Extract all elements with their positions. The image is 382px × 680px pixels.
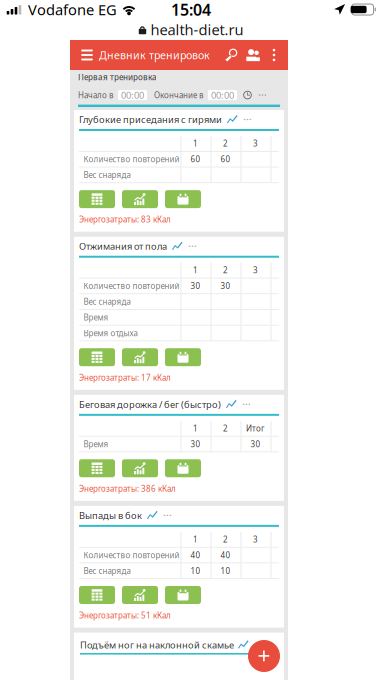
staticText: Количество повторений bbox=[84, 154, 180, 164]
button[interactable]: Search bbox=[221, 40, 241, 70]
staticText: 30 bbox=[251, 439, 261, 449]
staticText: 30 bbox=[191, 281, 201, 291]
staticText: 30 bbox=[221, 281, 231, 291]
button[interactable]: Table view bbox=[79, 586, 115, 604]
staticText: Беговая дорожка / бег (быстро) bbox=[79, 398, 221, 411]
button[interactable]: Friends bbox=[241, 40, 265, 70]
button[interactable]: Menu bbox=[75, 40, 99, 70]
staticText: Отжимания от пола bbox=[79, 240, 167, 252]
staticText: Энергозатраты: 386 кКал bbox=[79, 483, 176, 494]
button[interactable]: Table view bbox=[79, 348, 115, 366]
button[interactable]: Table view bbox=[79, 459, 115, 477]
button[interactable]: Calendar view bbox=[165, 459, 201, 477]
staticText: Глубокие приседания с гирями bbox=[79, 113, 222, 126]
staticText: Подъём ног на наклонной скамье bbox=[80, 639, 234, 651]
button[interactable]: Calendar view bbox=[165, 348, 201, 366]
staticText: Время bbox=[84, 312, 109, 323]
staticText: 1 bbox=[193, 265, 198, 275]
staticText: 60 bbox=[221, 154, 231, 164]
staticText: 1 bbox=[193, 534, 198, 545]
staticText: Энергозатраты: 83 кКал bbox=[79, 214, 171, 225]
staticText: Количество повторений bbox=[84, 550, 180, 560]
staticText: 3 bbox=[253, 534, 258, 545]
staticText: Энергозатраты: 51 кКал bbox=[79, 610, 171, 621]
staticText: 2 bbox=[223, 534, 228, 545]
staticText: 1 bbox=[193, 138, 198, 149]
staticText: Вес снаряда bbox=[84, 296, 131, 307]
staticText: Начало в bbox=[78, 90, 114, 100]
button[interactable]: Table view bbox=[79, 190, 115, 208]
staticText: Энергозатраты: 17 кКал bbox=[79, 372, 171, 383]
staticText: health-diet.ru bbox=[150, 20, 243, 39]
staticText: 30 bbox=[191, 439, 201, 449]
staticText: Выпады в бок bbox=[79, 509, 142, 522]
staticText: Дневник тренировок bbox=[99, 48, 210, 62]
staticText: 3 bbox=[253, 265, 258, 275]
staticText: 15:04 bbox=[171, 0, 211, 20]
staticText: Время bbox=[84, 439, 109, 449]
staticText: 40 bbox=[221, 550, 231, 560]
staticText: Вес снаряда bbox=[84, 170, 131, 180]
staticText: Первая тренировка bbox=[78, 72, 157, 82]
staticText: 3 bbox=[253, 138, 258, 149]
staticText: 1 bbox=[193, 423, 198, 434]
staticText: 2 bbox=[223, 423, 228, 434]
button[interactable]: Calendar view bbox=[165, 586, 201, 604]
button[interactable]: health-diet.ru bbox=[0, 19, 382, 40]
staticText: Время отдыха bbox=[84, 328, 138, 338]
staticText: 2 bbox=[223, 138, 228, 149]
button[interactable]: Calendar view bbox=[165, 190, 201, 208]
staticText: Итог bbox=[246, 423, 265, 434]
staticText: 10 bbox=[221, 565, 231, 576]
staticText: 00:00 bbox=[211, 89, 234, 101]
staticText: 10 bbox=[191, 565, 201, 576]
button[interactable]: Chart view bbox=[122, 190, 158, 208]
button[interactable]: More bbox=[265, 40, 283, 70]
staticText: 60 bbox=[191, 154, 201, 164]
staticText: 00:00 bbox=[121, 89, 144, 101]
staticText: 40 bbox=[191, 550, 201, 560]
staticText: Количество повторений bbox=[84, 281, 180, 291]
button[interactable]: Chart view bbox=[122, 348, 158, 366]
staticText: Vodafone EG bbox=[28, 0, 117, 19]
button[interactable]: Chart view bbox=[122, 459, 158, 477]
staticText: Окончание в bbox=[154, 90, 204, 100]
button[interactable]: Chart view bbox=[122, 586, 158, 604]
staticText: Вес снаряда bbox=[84, 565, 131, 576]
staticText: ⋯ bbox=[253, 639, 264, 651]
staticText: 2 bbox=[223, 265, 228, 275]
button[interactable]: Add exercise bbox=[248, 640, 280, 672]
